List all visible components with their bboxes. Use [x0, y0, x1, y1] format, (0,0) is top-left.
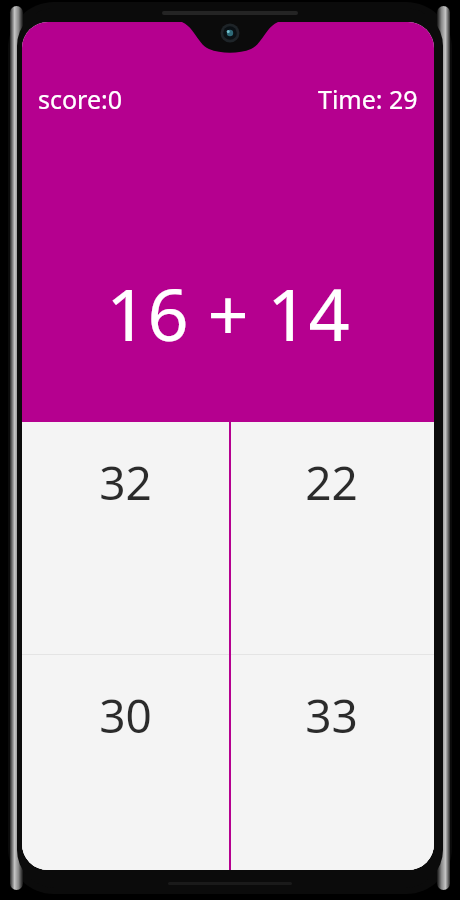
button[interactable]: 33: [228, 655, 434, 870]
button[interactable]: 30: [22, 655, 228, 870]
button[interactable]: 22: [228, 422, 434, 654]
staticText: 30: [99, 684, 152, 747]
staticText: 16 + 14: [106, 264, 350, 362]
staticText: 22: [305, 451, 358, 514]
button[interactable]: Time: 29: [318, 82, 418, 116]
staticText: 32: [99, 451, 152, 514]
staticText: 33: [305, 684, 358, 747]
button[interactable]: 32: [22, 422, 228, 654]
button[interactable]: score:0: [38, 82, 123, 116]
